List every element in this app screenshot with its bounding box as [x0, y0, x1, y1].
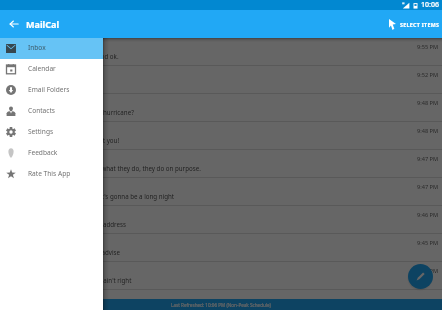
button[interactable]: Patrick	[0, 234, 442, 262]
staticText: 9:47 PM	[417, 183, 439, 191]
staticText: SELECT ITEMS	[400, 21, 440, 28]
staticText: MailCal	[26, 18, 60, 30]
button[interactable]: Jessica	[0, 150, 442, 178]
button[interactable]: Mom	[0, 94, 442, 122]
button[interactable]: Tim S	[0, 122, 442, 150]
button[interactable]: Calendar	[0, 59, 103, 80]
staticText: 9:48 PM	[417, 127, 439, 135]
staticText: Looks like it's gonna be a long night	[70, 192, 175, 200]
staticText: Please the advise	[70, 248, 120, 256]
staticText: 9:48 PM	[417, 99, 439, 107]
staticText: Feedback	[28, 148, 58, 157]
staticText: Contacts	[28, 106, 56, 115]
staticText: Rate This App	[28, 169, 71, 178]
button[interactable]: Sarah J	[0, 38, 442, 66]
staticText: 9:47 PM	[417, 155, 439, 163]
staticText: Here is the address	[70, 220, 126, 228]
staticText: Inbox	[28, 43, 46, 52]
button[interactable]: David B	[0, 66, 442, 94]
button[interactable]: Alex W	[0, 178, 442, 206]
staticText: Calendar	[28, 64, 56, 73]
button[interactable]: Settings	[0, 122, 103, 143]
button[interactable]: Contacts	[0, 101, 103, 122]
staticText: 10:06	[421, 0, 439, 10]
staticText: Did you go hurricane?	[70, 108, 134, 116]
button[interactable]: Rate This App	[0, 164, 103, 185]
staticText: 9:39 PM	[417, 267, 439, 275]
button[interactable]: Back	[6, 16, 22, 32]
staticText: 9:45 PM	[417, 239, 439, 247]
button[interactable]: SELECT ITEMS	[387, 15, 442, 34]
staticText: Something ain't right	[70, 276, 132, 284]
staticText: 9:46 PM	[417, 211, 439, 219]
button[interactable]: Jon Hale	[0, 262, 442, 290]
button[interactable]: Chris D	[0, 206, 442, 234]
staticText: Email Folders	[28, 85, 70, 94]
staticText: Sounds good ok.	[70, 52, 119, 60]
staticText: No matter what they do, they do on purpo…	[70, 164, 201, 172]
staticText: 9:55 PM	[417, 43, 439, 51]
staticText: 9:52 PM	[417, 71, 439, 79]
staticText: Thanks a lot you!	[70, 136, 120, 144]
staticText: Last Refreshed: 10:06 PM (Non-Peak Sched…	[171, 302, 271, 308]
button[interactable]: Inbox	[0, 38, 103, 59]
staticText: Settings	[28, 127, 54, 136]
button[interactable]: Feedback	[0, 143, 103, 164]
button[interactable]: Compose	[408, 264, 433, 289]
button[interactable]: Email Folders	[0, 80, 103, 101]
